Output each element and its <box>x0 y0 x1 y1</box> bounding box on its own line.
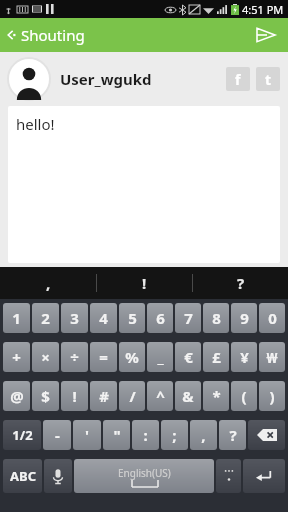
button[interactable]: ¥ <box>231 342 257 372</box>
staticText: ? <box>229 425 237 445</box>
button[interactable]: , <box>0 267 96 299</box>
staticText: 0 <box>268 308 277 328</box>
button[interactable]: # <box>90 381 117 411</box>
button[interactable]: 2 <box>32 303 59 333</box>
staticText: 4 <box>99 308 108 328</box>
staticText: ₩ <box>266 347 278 367</box>
staticText: 4:51 PM <box>242 2 284 17</box>
staticText: f <box>235 70 241 89</box>
staticText: € <box>184 347 193 367</box>
staticText: * <box>212 386 221 406</box>
staticText: $ <box>41 386 50 406</box>
staticText: ; <box>172 425 177 445</box>
button[interactable]: 5 <box>119 303 145 333</box>
button[interactable]: ? <box>219 420 246 450</box>
staticText: English(US) <box>118 466 171 480</box>
staticText: 8 <box>212 308 221 328</box>
button[interactable]: Voice input <box>44 459 72 493</box>
button[interactable]: & <box>175 381 201 411</box>
staticText: Shouting <box>21 25 85 45</box>
button[interactable]: ! <box>61 381 88 411</box>
button[interactable]: ! <box>97 267 192 299</box>
button[interactable]: = <box>90 342 117 372</box>
button[interactable]: " <box>103 420 130 450</box>
staticText: : <box>143 425 148 445</box>
staticText: 5 <box>128 308 137 328</box>
button[interactable]: ₩ <box>259 342 285 372</box>
staticText: & <box>182 386 194 406</box>
staticText: , <box>201 425 206 445</box>
staticText: t <box>265 70 272 89</box>
staticText: _ <box>157 347 164 367</box>
staticText: 2 <box>41 308 50 328</box>
other: Voice input <box>51 467 65 485</box>
button[interactable]: @ <box>3 381 30 411</box>
button[interactable]: 3 <box>61 303 88 333</box>
staticText: , <box>46 273 51 293</box>
button[interactable]: 8 <box>203 303 229 333</box>
staticText: hello! <box>16 114 55 134</box>
button[interactable]: ( <box>231 381 257 411</box>
button[interactable]: + <box>3 342 30 372</box>
button[interactable]: - <box>43 420 71 450</box>
button[interactable]: 0 <box>259 303 285 333</box>
staticText: # <box>99 386 109 406</box>
staticText: @ <box>10 386 24 406</box>
button[interactable]: / <box>119 381 145 411</box>
button[interactable]: ; <box>161 420 188 450</box>
staticText: + <box>12 347 21 367</box>
staticText: ^ <box>156 386 165 406</box>
staticText: ) <box>269 386 275 406</box>
button[interactable]: ) <box>259 381 285 411</box>
staticText: 7 <box>184 308 193 328</box>
staticText: ? <box>237 273 245 293</box>
button[interactable]: : <box>132 420 159 450</box>
staticText: ( <box>241 386 247 406</box>
staticText: % <box>125 347 139 367</box>
button[interactable]: , <box>190 420 217 450</box>
button[interactable]: 9 <box>231 303 257 333</box>
button[interactable]: € <box>175 342 201 372</box>
button[interactable]: Share on Facebook <box>226 67 250 91</box>
button[interactable]: * <box>203 381 229 411</box>
staticText: 9 <box>240 308 249 328</box>
button[interactable]: Avatar <box>8 58 50 100</box>
button[interactable]: 1/2 <box>3 420 41 450</box>
button[interactable]: More options <box>216 459 241 493</box>
staticText: User_wgukd <box>60 69 152 89</box>
button[interactable]: 6 <box>147 303 173 333</box>
staticText: / <box>129 386 136 406</box>
button[interactable]: 1 <box>3 303 30 333</box>
staticText: ¥ <box>240 347 249 367</box>
staticText: £ <box>212 347 221 367</box>
other: Backspace <box>257 429 277 441</box>
button[interactable]: ÷ <box>61 342 88 372</box>
button[interactable]: × <box>32 342 59 372</box>
button[interactable]: Backspace <box>248 420 285 450</box>
button[interactable]: % <box>119 342 145 372</box>
button[interactable]: _ <box>147 342 173 372</box>
staticText: ÷ <box>70 347 79 367</box>
staticText: ' <box>85 425 89 445</box>
staticText: 6 <box>156 308 165 328</box>
button[interactable]: ^ <box>147 381 173 411</box>
staticText: 1 <box>12 308 21 328</box>
button[interactable]: ABC <box>3 459 42 493</box>
button[interactable]: Shouting <box>4 25 85 45</box>
button[interactable]: 7 <box>175 303 201 333</box>
button[interactable]: ? <box>193 267 288 299</box>
staticText: ! <box>72 386 77 406</box>
button[interactable]: English(US) <box>74 459 214 493</box>
button[interactable]: 4 <box>90 303 117 333</box>
button[interactable]: Share on Twitter <box>256 67 280 91</box>
button[interactable]: ' <box>73 420 101 450</box>
button[interactable]: Send <box>252 21 280 49</box>
staticText: ABC <box>10 467 36 485</box>
staticText: 3 <box>70 308 79 328</box>
button[interactable]: hello! <box>8 106 280 263</box>
button[interactable]: $ <box>32 381 59 411</box>
other: More options <box>223 468 235 484</box>
staticText: - <box>55 425 60 445</box>
button[interactable]: £ <box>203 342 229 372</box>
button[interactable]: Enter <box>243 459 285 493</box>
